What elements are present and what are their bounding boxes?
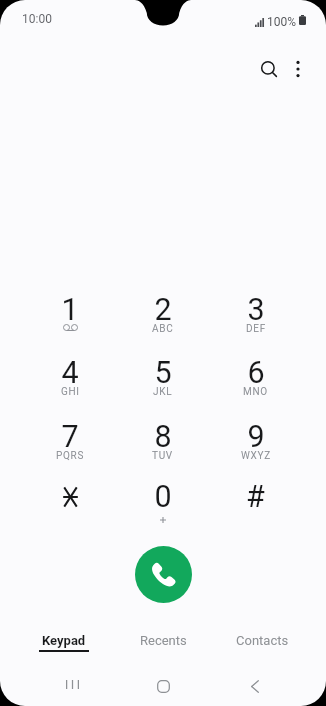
- staticText: ABC: [152, 323, 174, 335]
- button[interactable]: 3: [209, 292, 302, 348]
- staticText: 6: [247, 355, 265, 391]
- button[interactable]: 2: [116, 292, 209, 348]
- staticText: 9: [247, 419, 265, 455]
- staticText: 1: [61, 292, 79, 328]
- button[interactable]: Recent apps: [26, 666, 118, 706]
- staticText: Keypad: [42, 633, 86, 648]
- button[interactable]: Call: [135, 546, 192, 603]
- button[interactable]: 4: [24, 355, 116, 411]
- button[interactable]: Keypad: [14, 633, 114, 659]
- staticText: 7: [61, 419, 79, 455]
- staticText: Recents: [140, 633, 187, 648]
- staticText: JKL: [153, 386, 173, 398]
- staticText: Contacts: [236, 633, 289, 648]
- button[interactable]: 9: [209, 419, 302, 475]
- button[interactable]: Back: [209, 666, 300, 706]
- button[interactable]: 5: [116, 355, 209, 411]
- button[interactable]: Home: [118, 666, 209, 706]
- staticText: 3: [247, 292, 265, 328]
- staticText: #: [246, 479, 265, 515]
- button[interactable]: 6: [209, 355, 302, 411]
- staticText: 5: [154, 355, 172, 391]
- staticText: 0: [154, 479, 172, 515]
- staticText: 100%: [267, 15, 297, 29]
- staticText: 2: [154, 292, 172, 328]
- staticText: DEF: [246, 323, 266, 335]
- button[interactable]: 7: [24, 419, 116, 475]
- staticText: 4: [61, 355, 79, 391]
- button[interactable]: More options: [278, 49, 318, 89]
- button[interactable]: Recents: [114, 633, 213, 659]
- button[interactable]: Contacts: [213, 633, 312, 659]
- button[interactable]: 0: [116, 479, 209, 535]
- staticText: TUV: [152, 450, 173, 462]
- staticText: MNO: [243, 386, 268, 398]
- staticText: WXYZ: [241, 450, 271, 462]
- button[interactable]: #: [209, 479, 302, 535]
- staticText: PQRS: [56, 450, 85, 462]
- button[interactable]: [24, 479, 116, 535]
- staticText: GHI: [61, 386, 80, 398]
- button[interactable]: 1: [24, 292, 116, 348]
- button[interactable]: 8: [116, 419, 209, 475]
- staticText: 10:00: [22, 12, 52, 26]
- staticText: 8: [154, 419, 172, 455]
- button[interactable]: Search: [249, 49, 289, 89]
